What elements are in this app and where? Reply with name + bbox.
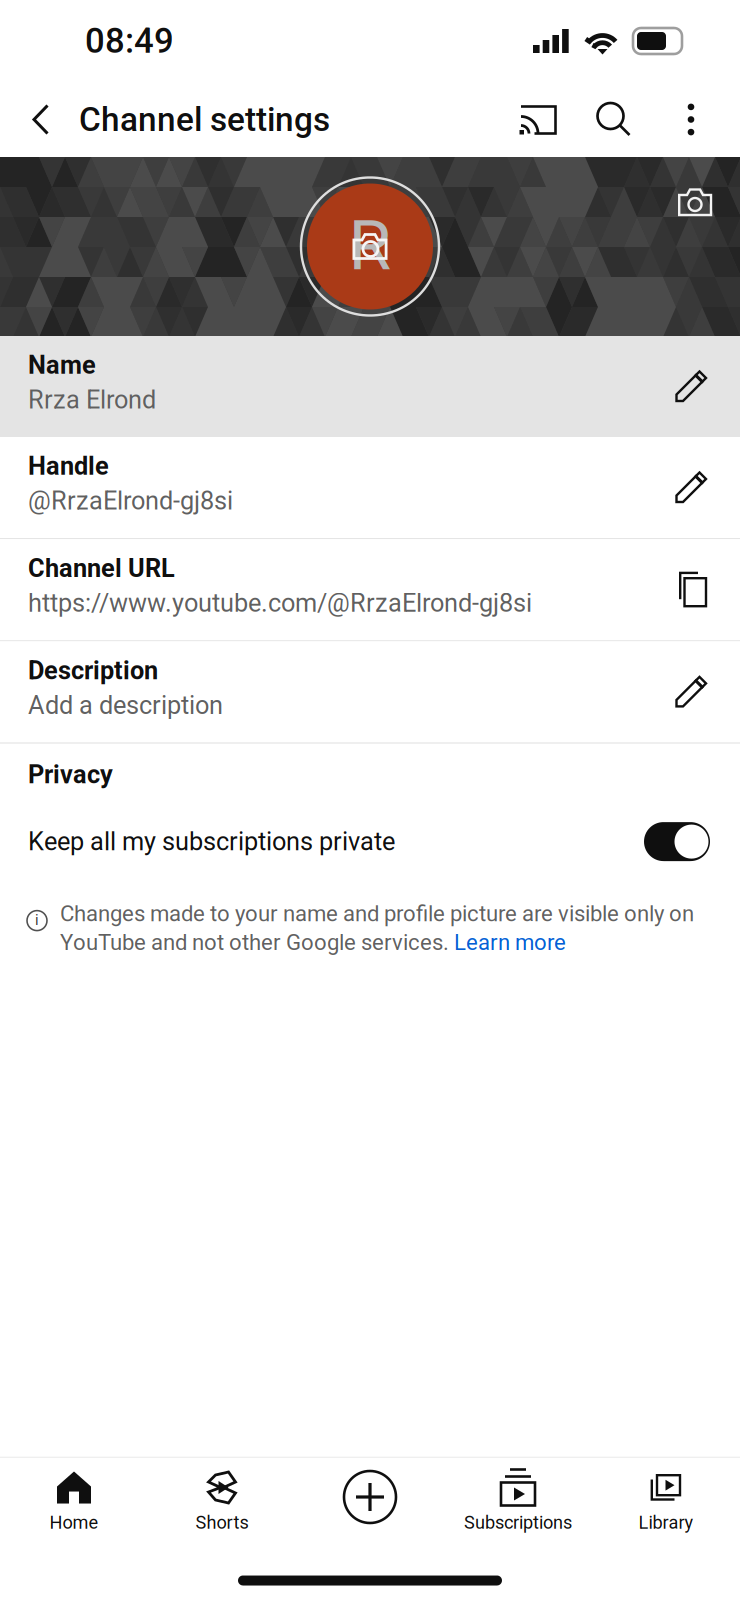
button[interactable]: Back [14,82,68,156]
staticText: Library [638,1512,693,1533]
button[interactable]: Change banner image [666,175,724,229]
staticText: i [35,911,39,929]
staticText: Learn more [454,929,566,955]
button[interactable]: Description [0,641,740,742]
button[interactable]: Subscriptions [444,1458,592,1540]
button[interactable]: Shorts [148,1458,296,1540]
button[interactable]: Cast [514,82,563,157]
staticText: Add a description [28,690,223,720]
button[interactable]: Create [296,1458,444,1540]
staticText: Changes made to your name and profile pi… [60,901,694,926]
button[interactable]: Handle [0,437,740,538]
staticText: Rrza Elrond [28,385,156,415]
staticText: Keep all my subscriptions private [28,827,395,856]
staticText: Subscriptions [464,1512,572,1533]
staticText: Channel settings [79,100,330,139]
staticText: YouTube and not other Google services. [60,929,454,955]
button[interactable]: Learn more [454,929,566,955]
button[interactable]: More options [665,82,717,157]
staticText: Shorts [195,1512,248,1533]
staticText: Channel URL [28,553,175,583]
staticText: Privacy [28,760,113,789]
button[interactable]: Keep all my subscriptions private [0,806,740,878]
button[interactable]: Home [0,1458,148,1540]
staticText: Description [28,656,158,685]
staticText: https://www.youtube.com/@RrzaElrond-gj8s… [28,588,532,618]
button[interactable]: Channel URL [0,539,740,640]
button[interactable]: Name [0,336,740,437]
staticText: Home [49,1512,98,1533]
staticText: 08:49 [85,21,174,61]
staticText: Name [28,350,96,380]
staticText: @RrzaElrond-gj8si [28,486,233,516]
button[interactable]: Library [592,1458,740,1540]
staticText: Handle [28,451,109,481]
staticText: R [348,205,391,286]
button[interactable]: Search [563,82,665,157]
